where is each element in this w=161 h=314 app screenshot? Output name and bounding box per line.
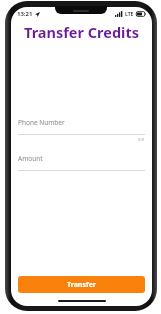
- staticText: Transfer: [67, 280, 96, 290]
- staticText: Transfer Credits: [24, 22, 139, 42]
- button[interactable]: Transfer: [18, 276, 145, 293]
- staticText: 13:21: [17, 10, 33, 18]
- staticText: Amount: [18, 154, 43, 163]
- other: Location: [35, 12, 40, 17]
- staticText: LTE: [125, 11, 134, 18]
- staticText: Phone Number: [18, 118, 65, 127]
- staticText: 0/8: [138, 137, 145, 142]
